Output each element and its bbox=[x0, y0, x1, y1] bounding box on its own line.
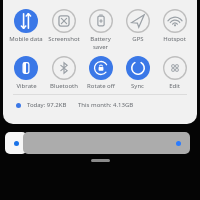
staticText: Bluetooth bbox=[50, 82, 78, 90]
button[interactable]: Bluetooth bbox=[45, 56, 82, 90]
button[interactable]: Hotspot bbox=[156, 9, 193, 43]
button[interactable]: Rotate off bbox=[82, 56, 119, 90]
button[interactable]: App shortcut bbox=[5, 132, 27, 154]
staticText: Screenshot bbox=[48, 35, 80, 43]
button[interactable]: Screenshot bbox=[45, 9, 82, 43]
staticText: Battery saver bbox=[82, 35, 119, 51]
button[interactable]: Brightness slider bbox=[23, 132, 190, 154]
button[interactable]: Vibrate bbox=[7, 56, 45, 90]
staticText: GPS bbox=[132, 35, 144, 43]
staticText: Vibrate bbox=[16, 82, 37, 90]
staticText: Edit bbox=[169, 82, 180, 90]
staticText: Rotate off bbox=[87, 82, 115, 90]
button[interactable]: GPS bbox=[119, 9, 156, 43]
staticText: Sync bbox=[131, 82, 144, 90]
staticText: This month: 4.13GB bbox=[78, 101, 134, 109]
staticText: Mobile data bbox=[9, 35, 43, 43]
button[interactable]: Battery saver bbox=[82, 9, 119, 51]
button[interactable]: Sync bbox=[119, 56, 156, 90]
staticText: Today: 97.2KB bbox=[27, 101, 67, 109]
staticText: Hotspot bbox=[163, 35, 186, 43]
button[interactable]: Edit bbox=[156, 56, 193, 90]
button[interactable]: Mobile data bbox=[7, 9, 45, 43]
